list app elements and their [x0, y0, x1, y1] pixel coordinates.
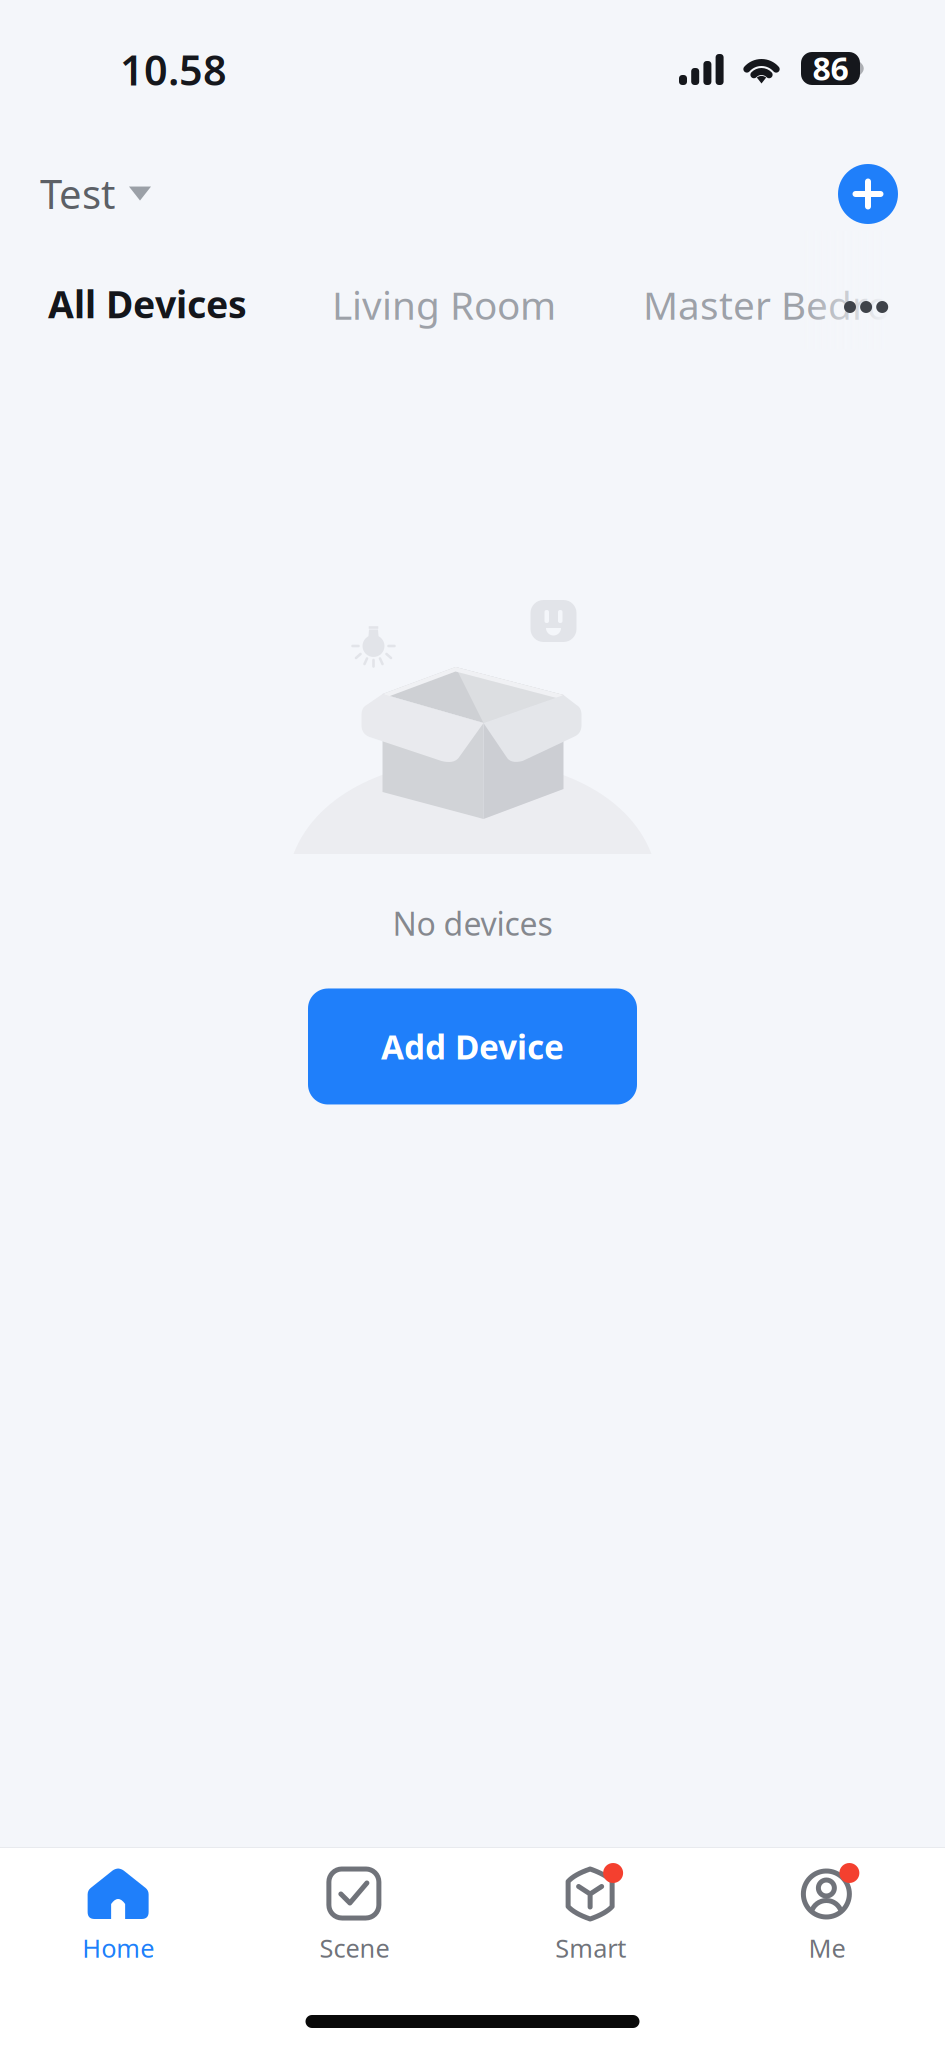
- staticText: Me: [808, 1931, 845, 1965]
- staticText: Test: [40, 167, 115, 220]
- button[interactable]: Smart: [472, 1863, 709, 1969]
- button[interactable]: Home: [0, 1863, 236, 1969]
- button[interactable]: All Devices: [48, 231, 332, 329]
- button[interactable]: More rooms: [800, 231, 945, 349]
- staticText: All Devices: [48, 279, 247, 329]
- staticText: 86: [812, 47, 848, 89]
- button[interactable]: Add Device: [308, 988, 637, 1104]
- button[interactable]: Master Bedroom: [643, 231, 945, 330]
- staticText: Add Device: [381, 1024, 564, 1069]
- button[interactable]: Living Room: [332, 231, 643, 330]
- staticText: Living Room: [332, 279, 556, 330]
- button[interactable]: Test: [0, 143, 181, 244]
- button[interactable]: Me: [709, 1863, 945, 1969]
- staticText: Smart: [555, 1931, 626, 1965]
- staticText: Scene: [319, 1931, 389, 1965]
- staticText: 10.58: [120, 42, 227, 97]
- staticText: Master Bedroom: [643, 279, 945, 330]
- button[interactable]: Add device: [808, 143, 945, 231]
- staticText: No devices: [392, 902, 552, 944]
- staticText: Home: [82, 1931, 154, 1965]
- button[interactable]: Scene: [236, 1863, 472, 1969]
